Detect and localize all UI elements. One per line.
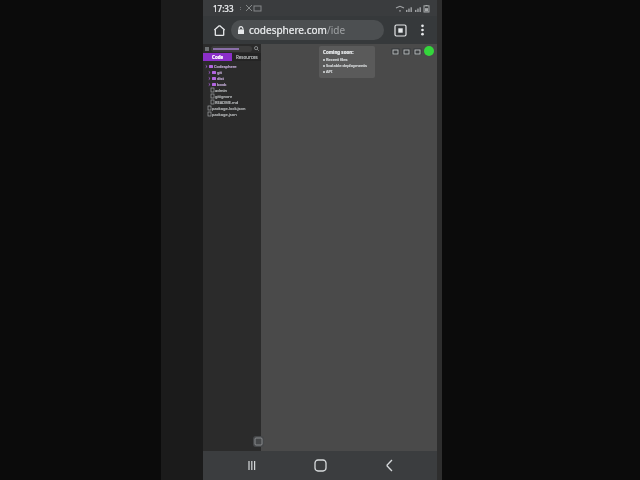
button[interactable]: Status: running bbox=[424, 46, 434, 56]
button[interactable]: Coming soon: bbox=[319, 46, 375, 78]
staticText: admin bbox=[215, 88, 227, 93]
button[interactable]: package-lock.json bbox=[203, 105, 261, 111]
button[interactable]: Back bbox=[369, 451, 409, 480]
button[interactable]: admin bbox=[203, 87, 261, 93]
button[interactable]: Tabs bbox=[390, 20, 410, 40]
staticText: codesphere.com bbox=[249, 23, 327, 37]
staticText: Recent files bbox=[326, 57, 348, 62]
button[interactable]: Home bbox=[300, 451, 340, 480]
button[interactable] bbox=[211, 46, 252, 52]
button[interactable]: package.json bbox=[203, 111, 261, 117]
button[interactable]: Resources bbox=[232, 53, 261, 61]
button[interactable]: Codesphere bbox=[203, 63, 261, 69]
staticText: /ide bbox=[327, 23, 346, 37]
staticText: dist bbox=[217, 76, 224, 81]
staticText: Code bbox=[212, 54, 224, 60]
button[interactable]: Keyboard bbox=[253, 436, 264, 447]
button[interactable]: README.md bbox=[203, 99, 261, 105]
staticText: Coming soon: bbox=[323, 49, 354, 55]
staticText: package-lock.json bbox=[212, 106, 246, 111]
staticText: Codesphere bbox=[214, 64, 237, 69]
staticText: Resources bbox=[236, 54, 258, 60]
button[interactable]: book bbox=[203, 81, 261, 87]
staticText: API bbox=[326, 69, 333, 74]
button[interactable]: dist bbox=[203, 75, 261, 81]
button[interactable]: git bbox=[203, 69, 261, 75]
staticText: git bbox=[217, 70, 222, 75]
button[interactable]: Home bbox=[209, 20, 229, 40]
staticText: Scalable deployments bbox=[326, 63, 367, 68]
staticText: 17:33 bbox=[213, 3, 234, 14]
staticText: README.md bbox=[215, 100, 239, 105]
button[interactable]: gitignore bbox=[203, 93, 261, 99]
button[interactable]: codesphere.com bbox=[231, 20, 384, 40]
button[interactable]: Preview bbox=[413, 48, 422, 55]
button[interactable]: Split bbox=[391, 48, 400, 55]
button[interactable]: Code bbox=[203, 53, 232, 61]
staticText: gitignore bbox=[215, 94, 233, 99]
button[interactable]: Recents bbox=[232, 451, 272, 480]
staticText: book bbox=[217, 82, 227, 87]
other: Search bbox=[254, 46, 259, 51]
button[interactable]: Terminal bbox=[402, 48, 411, 55]
staticText: package.json bbox=[212, 112, 237, 117]
button[interactable]: More options bbox=[412, 20, 432, 40]
